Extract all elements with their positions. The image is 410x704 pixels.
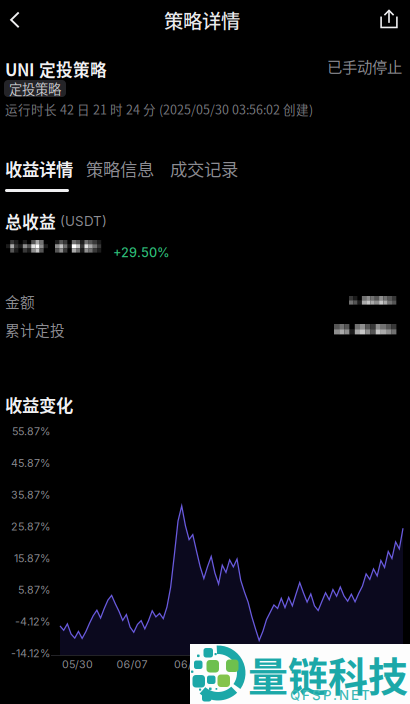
button[interactable]: 成交记录 [170, 156, 238, 181]
staticText: 15.87% [14, 552, 50, 565]
button[interactable]: 收益详情 [5, 156, 73, 181]
staticText: 已手动停止 [327, 55, 402, 77]
staticText: +29.50% [113, 245, 170, 260]
staticText: 累计定投 [5, 319, 65, 340]
button[interactable]: Share [375, 5, 403, 33]
staticText: 策略详情 [164, 6, 240, 34]
staticText: 06/15 [174, 658, 202, 671]
button[interactable]: 策略信息 [86, 156, 154, 181]
staticText: 策略信息 [86, 156, 154, 181]
staticText: 5.87% [18, 583, 50, 596]
staticText: 45.87% [11, 457, 50, 470]
staticText: 运行时长 42 日 21 时 24 分 (2025/05/30 03:56:02… [5, 100, 313, 118]
staticText: UNI 定投策略 [5, 57, 107, 81]
staticText: (USDT) [56, 213, 107, 229]
staticText: 定投策略 [9, 79, 61, 98]
staticText: 量链科技 [248, 645, 408, 703]
staticText: 25.87% [11, 520, 50, 533]
staticText: 成交记录 [170, 156, 238, 181]
staticText: QFSP.NET [290, 687, 370, 703]
staticText: 05/30 [62, 658, 93, 671]
staticText: 06/07 [116, 658, 147, 671]
staticText: 35.87% [11, 488, 50, 501]
staticText: -4.12% [15, 615, 50, 628]
staticText: -14.12% [11, 647, 50, 660]
staticText: 收益变化 [5, 392, 73, 417]
staticText: 收益详情 [5, 156, 73, 181]
staticText: 55.87% [12, 425, 50, 438]
staticText: 金额 [5, 291, 35, 312]
button[interactable]: Back [1, 8, 29, 32]
staticText: 总收益 [5, 209, 56, 233]
